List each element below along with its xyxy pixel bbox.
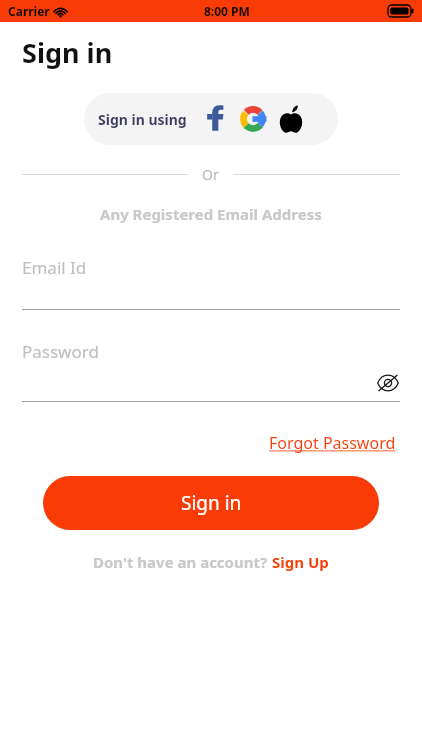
staticText: Email Id: [22, 256, 87, 279]
button[interactable]: Sign in with Facebook: [201, 105, 229, 133]
staticText: Sign in: [181, 490, 242, 516]
staticText: Or: [202, 165, 219, 184]
button[interactable]: Forgot Password: [269, 432, 396, 454]
button[interactable]: Password: [22, 340, 400, 402]
staticText: 8:00 PM: [204, 3, 250, 19]
staticText: Sign Up: [272, 552, 329, 572]
button[interactable]: Sign in using: [84, 93, 338, 145]
button[interactable]: Sign in: [43, 476, 379, 530]
staticText: Don't have an account?: [93, 552, 272, 572]
staticText: Forgot Password: [269, 432, 396, 454]
button[interactable]: Email Id: [22, 256, 400, 310]
button[interactable]: Show password: [376, 371, 400, 395]
staticText: Carrier: [8, 3, 50, 19]
button[interactable]: Sign Up: [272, 552, 329, 572]
staticText: Password: [22, 340, 99, 363]
button[interactable]: Sign in with Google: [239, 105, 267, 133]
staticText: Sign in using: [98, 110, 187, 129]
staticText: Sign in: [22, 34, 113, 71]
staticText: Any Registered Email Address: [100, 204, 322, 224]
button[interactable]: Sign in with Apple: [277, 105, 305, 133]
